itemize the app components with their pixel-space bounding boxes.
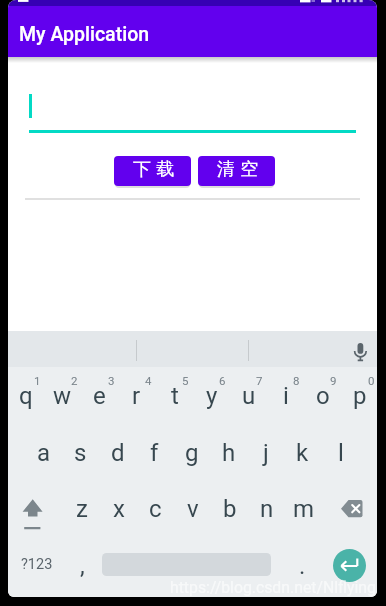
- staticText: e: [93, 382, 106, 410]
- staticText: 9: [330, 374, 337, 387]
- button[interactable]: z: [63, 495, 100, 523]
- staticText: a: [37, 439, 51, 467]
- button[interactable]: v: [174, 495, 211, 523]
- staticText: 8: [293, 374, 300, 387]
- button[interactable]: s: [62, 439, 99, 467]
- staticText: h: [222, 439, 236, 467]
- staticText: 2: [71, 374, 78, 387]
- staticText: m: [293, 495, 315, 523]
- button[interactable]: 清空: [198, 156, 275, 186]
- button[interactable]: a: [25, 439, 62, 467]
- staticText: i: [283, 382, 289, 410]
- button[interactable]: i: [267, 382, 304, 410]
- staticText: x: [113, 495, 125, 523]
- button[interactable]: n: [248, 495, 285, 523]
- staticText: v: [187, 495, 199, 523]
- button[interactable]: l: [322, 439, 359, 467]
- staticText: t: [171, 382, 179, 410]
- button[interactable]: y: [193, 382, 230, 410]
- button[interactable]: t: [156, 382, 193, 410]
- button[interactable]: q: [8, 382, 44, 410]
- button[interactable]: w: [44, 382, 81, 410]
- staticText: d: [111, 439, 125, 467]
- staticText: ?123: [21, 556, 53, 573]
- staticText: 3: [108, 374, 115, 387]
- staticText: y: [206, 382, 218, 410]
- staticText: n: [260, 495, 274, 523]
- staticText: 5: [182, 374, 189, 387]
- button[interactable]: ,: [64, 552, 101, 580]
- staticText: 4: [145, 374, 152, 387]
- button[interactable]: [17, 489, 49, 534]
- staticText: r: [132, 382, 141, 410]
- button[interactable]: [335, 492, 367, 524]
- staticText: p: [353, 382, 367, 410]
- button[interactable]: [333, 549, 366, 582]
- staticText: f: [150, 439, 159, 467]
- staticText: https://blog.csdn.net/Nlflying: [170, 578, 376, 597]
- staticText: .: [299, 552, 306, 580]
- button[interactable]: p: [341, 382, 377, 410]
- button[interactable]: c: [137, 495, 174, 523]
- staticText: 6: [219, 374, 226, 387]
- button[interactable]: u: [230, 382, 267, 410]
- button[interactable]: .: [284, 552, 321, 580]
- button[interactable]: o: [304, 382, 341, 410]
- button[interactable]: f: [136, 439, 173, 467]
- staticText: 7: [256, 374, 263, 387]
- staticText: 0: [368, 374, 375, 387]
- staticText: j: [263, 439, 269, 467]
- staticText: ,: [80, 552, 85, 580]
- staticText: k: [296, 439, 309, 467]
- button[interactable]: d: [99, 439, 136, 467]
- button[interactable]: ?123: [18, 556, 55, 573]
- button[interactable]: g: [173, 439, 210, 467]
- staticText: g: [185, 439, 199, 467]
- button[interactable]: x: [100, 495, 137, 523]
- button[interactable]: h: [210, 439, 247, 467]
- button[interactable]: [346, 336, 376, 366]
- staticText: c: [149, 495, 162, 523]
- staticText: z: [76, 495, 88, 523]
- button[interactable]: r: [118, 382, 155, 410]
- staticText: 清空: [217, 158, 264, 181]
- staticText: w: [53, 382, 72, 410]
- button[interactable]: 下载: [114, 156, 191, 186]
- button[interactable]: k: [284, 439, 321, 467]
- staticText: My Application: [19, 23, 150, 46]
- staticText: b: [223, 495, 237, 523]
- button[interactable]: j: [247, 439, 284, 467]
- staticText: o: [316, 382, 330, 410]
- staticText: s: [74, 439, 87, 467]
- button[interactable]: e: [81, 382, 118, 410]
- staticText: 1: [34, 374, 41, 387]
- button[interactable]: m: [285, 495, 322, 523]
- staticText: u: [242, 382, 256, 410]
- staticText: 下载: [133, 158, 180, 181]
- button[interactable]: b: [211, 495, 248, 523]
- staticText: l: [338, 439, 344, 467]
- staticText: q: [19, 382, 33, 410]
